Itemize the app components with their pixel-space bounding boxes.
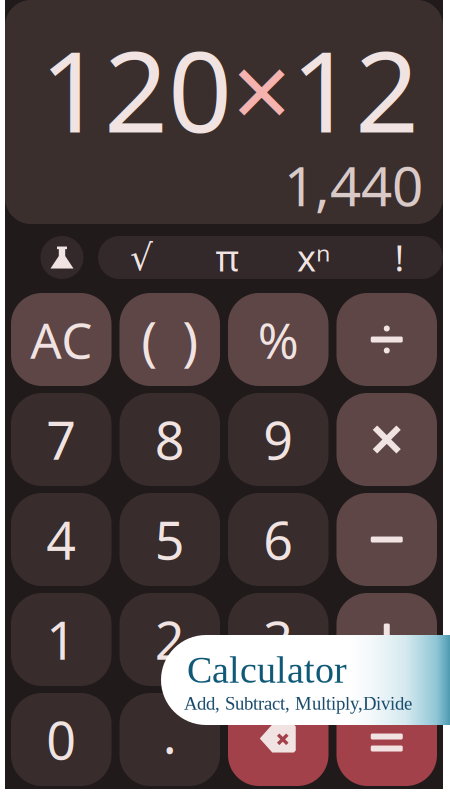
button[interactable]: 6	[228, 493, 328, 586]
staticText: π	[215, 234, 239, 281]
button[interactable]: Multiply	[336, 393, 437, 486]
staticText: 8	[155, 405, 185, 474]
button[interactable]: 1	[11, 593, 111, 686]
button[interactable]: 0	[11, 693, 111, 786]
button[interactable]: 3	[228, 593, 328, 686]
staticText: !	[394, 234, 404, 281]
staticText: xⁿ	[297, 234, 330, 281]
button[interactable]: .	[119, 693, 220, 786]
staticText: 7	[46, 405, 76, 474]
staticText: 2	[155, 605, 185, 674]
button[interactable]: Equals	[336, 693, 437, 786]
button[interactable]: 7	[11, 393, 111, 486]
staticText: .	[163, 699, 177, 768]
staticText: Add, Subtract, Multiply,Divide	[184, 693, 412, 714]
button[interactable]: 8	[119, 393, 220, 486]
staticText: %	[258, 307, 299, 372]
button[interactable]: Backspace	[228, 693, 328, 786]
button[interactable]: Subtract	[336, 493, 437, 586]
button[interactable]: 9	[228, 393, 328, 486]
staticText: 0	[46, 705, 76, 774]
staticText: ×	[232, 20, 291, 158]
staticText: Calculator	[187, 649, 347, 691]
button[interactable]: More functions	[98, 236, 443, 279]
staticText: )	[182, 304, 198, 375]
staticText: 1	[46, 605, 76, 674]
button[interactable]: Divide	[336, 293, 437, 386]
staticText: 6	[263, 505, 293, 574]
staticText: 9	[263, 405, 293, 474]
staticText: 1,440	[284, 149, 423, 221]
staticText: (	[141, 304, 157, 375]
button[interactable]: Scientific mode	[36, 236, 88, 279]
staticText: √	[130, 237, 153, 278]
button[interactable]: 5	[119, 493, 220, 586]
staticText: 4	[46, 505, 76, 574]
button[interactable]: 2	[119, 593, 220, 686]
staticText: 120	[40, 15, 232, 163]
button[interactable]: Parentheses	[119, 293, 220, 386]
staticText: 12	[291, 15, 419, 163]
button[interactable]: Add	[336, 593, 437, 686]
button[interactable]: 4	[11, 493, 111, 586]
button[interactable]: AC	[11, 293, 111, 386]
staticText: 5	[155, 505, 185, 574]
staticText: 3	[263, 605, 293, 674]
staticText: AC	[30, 307, 92, 372]
button[interactable]: %	[228, 293, 328, 386]
